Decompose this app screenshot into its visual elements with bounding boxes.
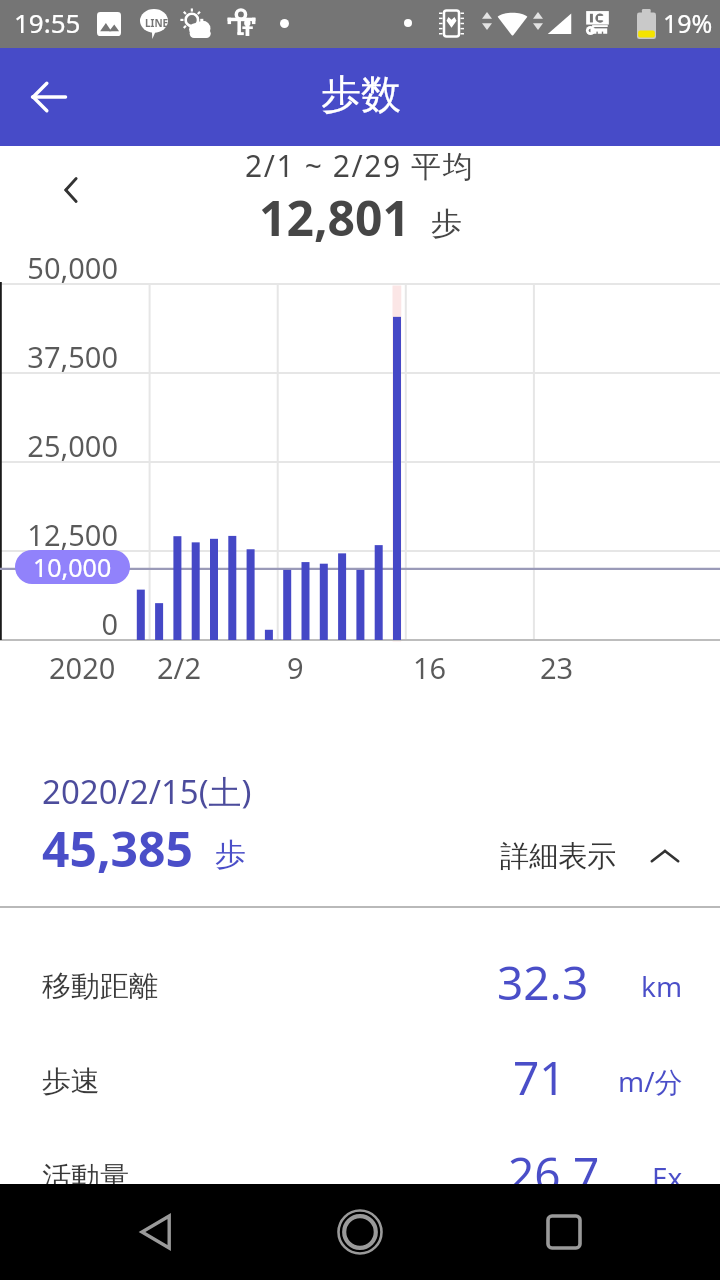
staticText: LINE	[145, 16, 169, 30]
button[interactable]: Back	[122, 1196, 194, 1268]
staticText: 2/1 ~ 2/29 平均	[245, 145, 475, 186]
staticText: 50,000	[0, 248, 118, 287]
staticText: 9	[287, 648, 304, 687]
staticText: 2/2	[157, 648, 201, 687]
button[interactable]: Recent apps	[528, 1196, 600, 1268]
staticText: 19%	[663, 6, 713, 40]
staticText: 23	[540, 648, 574, 687]
staticText: km	[641, 967, 683, 1005]
staticText: 歩速	[42, 1063, 100, 1100]
staticText: 活動量	[42, 1159, 129, 1196]
button[interactable]: 歩速	[0, 1032, 720, 1128]
staticText: 2020/2/15(土)	[42, 769, 252, 814]
button[interactable]: Back	[20, 68, 78, 126]
staticText: 26.7	[508, 1142, 600, 1205]
staticText: 45,385	[42, 816, 193, 881]
staticText: 12,801	[259, 185, 410, 250]
button[interactable]: Home	[324, 1196, 396, 1268]
staticText: 71	[513, 1046, 566, 1109]
staticText: 歩	[431, 204, 462, 243]
button[interactable]: 詳細表示	[484, 826, 696, 887]
staticText: 歩	[215, 835, 246, 874]
button[interactable]: 移動距離	[0, 937, 720, 1033]
staticText: m/分	[618, 1062, 683, 1100]
staticText: 2020	[49, 648, 116, 687]
staticText: 25,000	[0, 426, 118, 465]
button[interactable]: 活動量	[0, 1128, 720, 1224]
button[interactable]: 10,000	[15, 550, 130, 584]
button[interactable]: Previous period	[47, 165, 97, 215]
staticText: 歩数	[321, 69, 401, 119]
staticText: 10,000	[33, 550, 112, 584]
staticText: 32.3	[497, 951, 589, 1014]
staticText: 0	[0, 604, 118, 643]
staticText: 19:55	[14, 5, 81, 40]
staticText: 12,500	[0, 515, 118, 554]
staticText: 移動距離	[42, 968, 158, 1005]
staticText: 37,500	[0, 337, 118, 376]
staticText: Ex	[652, 1158, 683, 1196]
staticText: 詳細表示	[500, 838, 616, 875]
staticText: 16	[413, 648, 447, 687]
